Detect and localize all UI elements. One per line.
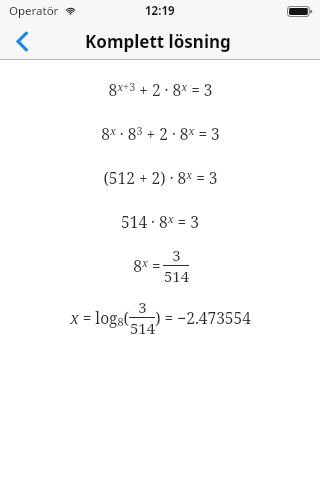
- staticText: 8x · 83 + 2 · 8x = 3: [101, 123, 220, 144]
- staticText: Operatör: [9, 3, 59, 19]
- staticText: (512 + 2) · 8x = 3: [103, 167, 218, 188]
- staticText: 514 · 8x = 3: [121, 211, 199, 232]
- staticText: 514: [164, 266, 189, 286]
- staticText: x = log8(: [70, 307, 129, 329]
- staticText: 3: [172, 245, 181, 265]
- button[interactable]: Back: [0, 22, 46, 60]
- staticText: ) = −2.473554: [155, 307, 251, 328]
- staticText: 514: [130, 318, 155, 338]
- staticText: Komplett lösning: [85, 30, 231, 53]
- staticText: 8x+3 + 2 · 8x = 3: [108, 79, 213, 100]
- staticText: 3: [138, 297, 147, 317]
- staticText: 12:19: [145, 3, 175, 19]
- staticText: 8x =: [131, 255, 163, 276]
